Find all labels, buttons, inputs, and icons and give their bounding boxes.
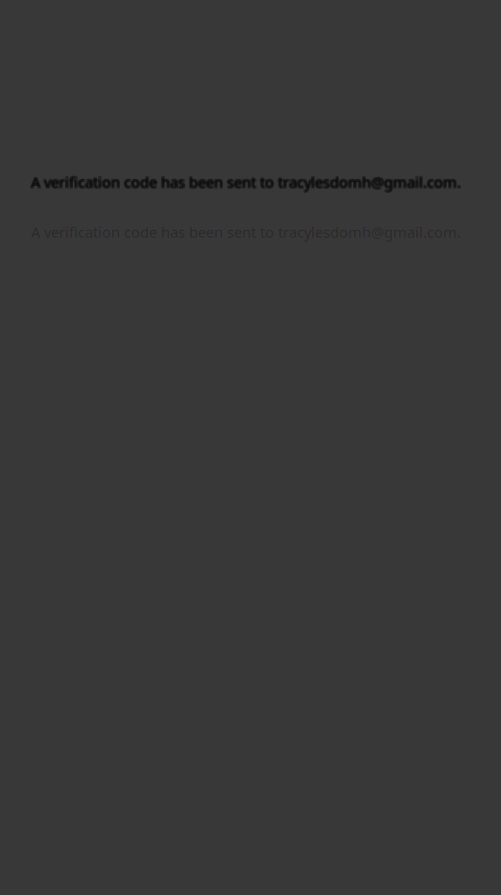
staticText: A verification code has been sent to tra… <box>31 173 461 193</box>
staticText: A verification code has been sent to tra… <box>31 222 461 242</box>
staticText: A verification code has been sent to tra… <box>30 171 460 191</box>
staticText: A verification code has been sent to tra… <box>32 171 462 191</box>
staticText: A verification code has been sent to tra… <box>32 173 462 193</box>
staticText: A verification code has been sent to tra… <box>31 171 461 191</box>
staticText: A verification code has been sent to tra… <box>30 173 460 193</box>
staticText: A verification code has been sent to tra… <box>30 172 460 192</box>
staticText: A verification code has been sent to tra… <box>31 172 461 192</box>
staticText: A verification code has been sent to tra… <box>32 172 462 192</box>
